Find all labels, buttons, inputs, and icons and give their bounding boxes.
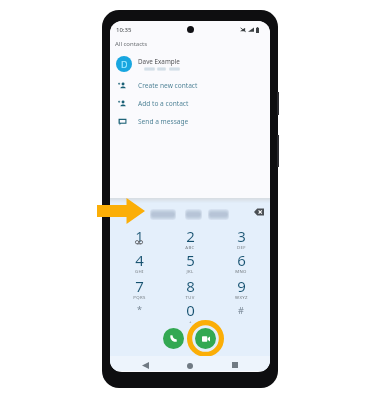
button[interactable]: Video call bbox=[195, 328, 216, 349]
button[interactable]: 0 bbox=[166, 300, 214, 323]
staticText: All contacts bbox=[115, 40, 148, 48]
staticText: 7 bbox=[135, 276, 144, 296]
button[interactable]: 8 bbox=[166, 276, 214, 299]
staticText: GHI bbox=[135, 268, 144, 274]
staticText: 9 bbox=[237, 276, 246, 296]
staticText: 10:35 bbox=[116, 26, 132, 34]
button[interactable] bbox=[110, 53, 270, 75]
button[interactable]: Backspace bbox=[254, 208, 264, 216]
staticText: 6 bbox=[237, 250, 246, 270]
staticText: Create new contact bbox=[138, 81, 198, 90]
staticText: MNO bbox=[235, 268, 247, 274]
staticText: JKL bbox=[186, 268, 194, 274]
staticText: DEF bbox=[237, 244, 246, 250]
staticText: 4 bbox=[135, 250, 144, 270]
staticText: Add to a contact bbox=[138, 99, 189, 108]
staticText: ABC bbox=[185, 244, 195, 250]
staticText: PQRS bbox=[133, 294, 146, 300]
button[interactable] bbox=[110, 77, 270, 95]
button[interactable] bbox=[110, 113, 270, 131]
staticText: 3 bbox=[237, 226, 246, 246]
button[interactable]: 2 bbox=[166, 226, 214, 249]
staticText: Dave Example bbox=[138, 57, 180, 66]
button[interactable]: * bbox=[115, 300, 163, 323]
button[interactable]: 6 bbox=[217, 250, 265, 273]
staticText: 1 bbox=[135, 226, 144, 246]
staticText: WXYZ bbox=[235, 294, 248, 300]
staticText: D bbox=[121, 58, 128, 70]
staticText: Send a message bbox=[138, 117, 189, 126]
staticText: + bbox=[189, 318, 192, 324]
button[interactable]: 7 bbox=[115, 276, 163, 299]
staticText: 0 bbox=[186, 300, 195, 320]
button[interactable]: 4 bbox=[115, 250, 163, 273]
button[interactable]: 1 bbox=[115, 226, 163, 249]
button[interactable]: 5 bbox=[166, 250, 214, 273]
staticText: TUV bbox=[185, 294, 195, 300]
staticText: * bbox=[137, 303, 142, 315]
button[interactable]: 3 bbox=[217, 226, 265, 249]
staticText: 2 bbox=[186, 226, 195, 246]
button[interactable]: # bbox=[217, 300, 265, 323]
button[interactable]: Home bbox=[182, 358, 198, 372]
button[interactable]: 9 bbox=[217, 276, 265, 299]
button[interactable]: Call bbox=[163, 328, 184, 349]
staticText: 8 bbox=[186, 276, 195, 296]
button[interactable] bbox=[110, 95, 270, 113]
button[interactable]: Back bbox=[137, 357, 153, 372]
staticText: # bbox=[238, 304, 244, 316]
button[interactable]: Recents bbox=[227, 357, 243, 372]
staticText: 5 bbox=[186, 250, 195, 270]
